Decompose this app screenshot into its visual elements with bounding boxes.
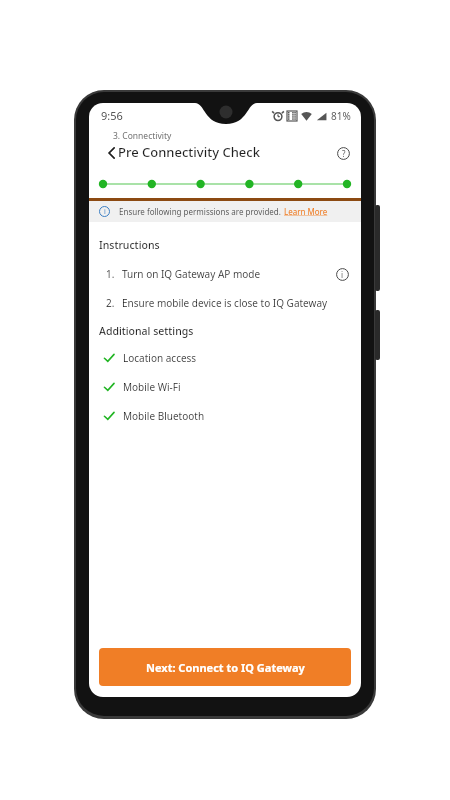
staticText: Ensure mobile device is close to IQ Gate… <box>122 296 328 310</box>
staticText: Location access <box>123 351 197 365</box>
staticText: 3. Connectivity <box>113 130 172 142</box>
button[interactable]: 2. <box>99 296 351 310</box>
button[interactable]: Mobile Bluetooth <box>99 409 351 423</box>
staticText: Next: Connect to IQ Gateway <box>146 660 305 675</box>
button[interactable]: Info <box>333 265 351 283</box>
staticText: Pre Connectivity Check <box>118 143 260 161</box>
staticText: Mobile Wi-Fi <box>123 380 181 394</box>
button[interactable]: Mobile Wi-Fi <box>99 380 351 394</box>
staticText: 2. <box>106 296 115 310</box>
staticText: Instructions <box>99 238 160 252</box>
staticText: ? <box>342 148 346 159</box>
button[interactable]: Next: Connect to IQ Gateway <box>99 648 351 686</box>
button[interactable]: Location access <box>99 351 351 365</box>
staticText: Turn on IQ Gateway AP mode <box>122 267 261 281</box>
staticText: Additional settings <box>99 324 194 338</box>
staticText: 81% <box>331 109 351 123</box>
button[interactable]: Help <box>330 140 356 166</box>
staticText: Ensure following permissions are provide… <box>119 206 281 217</box>
staticText: Mobile Bluetooth <box>123 409 205 423</box>
staticText: i <box>104 207 106 217</box>
staticText: i <box>341 269 344 280</box>
button[interactable]: Learn More <box>284 206 328 217</box>
button[interactable]: i <box>89 201 361 222</box>
button[interactable]: Back <box>100 141 124 165</box>
button[interactable]: 1. <box>99 265 351 283</box>
staticText: 1. <box>106 267 115 281</box>
staticText: 9:56 <box>101 108 123 123</box>
